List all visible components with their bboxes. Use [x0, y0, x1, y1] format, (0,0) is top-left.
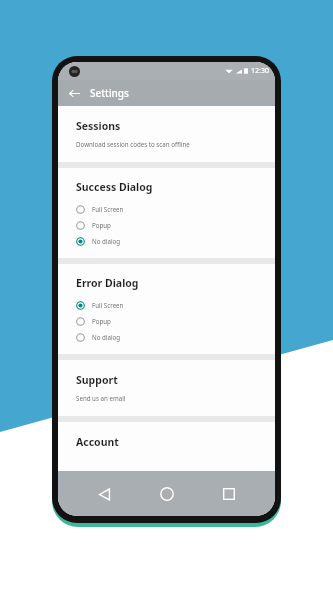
staticText: Download session codes to scan offline	[76, 140, 190, 148]
staticText: Send us an email	[76, 394, 126, 402]
staticText: Popup	[92, 317, 111, 325]
button[interactable]: Recent apps	[212, 477, 246, 511]
button[interactable]: No dialog	[58, 329, 275, 345]
staticText: Support	[76, 373, 118, 387]
button[interactable]: Full Screen	[58, 201, 275, 217]
staticText: Success Dialog	[76, 180, 153, 194]
button[interactable]: Support	[58, 360, 275, 416]
button[interactable]: Popup	[58, 217, 275, 233]
staticText: No dialog	[92, 237, 121, 245]
staticText: Settings	[90, 86, 129, 100]
button[interactable]: Full Screen	[58, 297, 275, 313]
staticText: Account	[76, 435, 119, 449]
button[interactable]: Home	[150, 477, 184, 511]
button[interactable]: Sessions	[58, 106, 275, 162]
staticText: No dialog	[92, 333, 121, 341]
button[interactable]: Back	[87, 477, 121, 511]
staticText: 12:30	[251, 66, 269, 76]
button[interactable]: No dialog	[58, 233, 275, 249]
button[interactable]: Popup	[58, 313, 275, 329]
staticText: Full Screen	[92, 205, 124, 213]
staticText: Full Screen	[92, 301, 124, 309]
staticText: Error Dialog	[76, 276, 139, 290]
button[interactable]: Back	[66, 85, 82, 101]
button[interactable]: Account	[58, 422, 275, 471]
staticText: Sessions	[76, 119, 121, 133]
staticText: Popup	[92, 221, 111, 229]
